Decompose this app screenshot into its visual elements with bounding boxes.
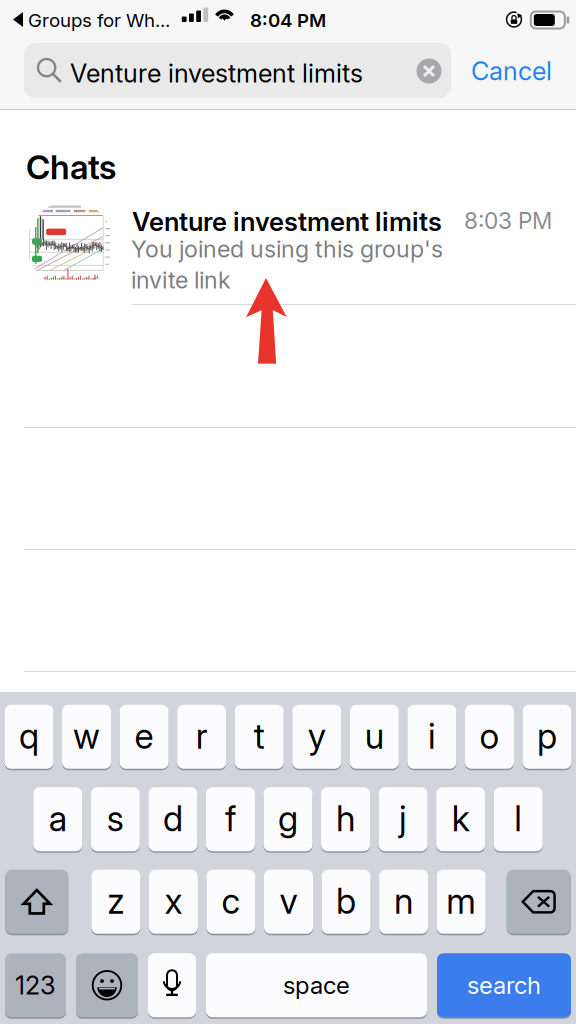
staticText: d xyxy=(163,798,183,840)
staticText: p xyxy=(537,715,557,757)
staticText: Venture investment limits xyxy=(132,206,442,237)
staticText: v xyxy=(279,880,297,922)
staticText: Groups for Wh... xyxy=(28,9,170,32)
staticText: q xyxy=(19,715,39,757)
button[interactable]: n xyxy=(379,869,428,934)
button[interactable]: j xyxy=(379,786,428,852)
staticText: space xyxy=(283,971,350,1000)
button[interactable]: Clear search text xyxy=(408,47,450,95)
staticText: 8:03 PM xyxy=(464,207,552,234)
staticText: h xyxy=(336,798,355,840)
button[interactable]: space xyxy=(206,952,427,1018)
button[interactable]: f xyxy=(206,786,255,852)
staticText: u xyxy=(365,715,384,757)
staticText: You joined using this group's xyxy=(131,235,443,263)
staticText: j xyxy=(399,798,407,840)
staticText: y xyxy=(308,715,326,757)
button[interactable]: w xyxy=(62,704,111,769)
button[interactable]: a xyxy=(33,786,82,852)
staticText: e xyxy=(135,715,154,757)
staticText: k xyxy=(452,798,470,840)
button[interactable]: i xyxy=(407,704,456,769)
staticText: Chats xyxy=(26,147,116,187)
staticText: i xyxy=(428,715,436,757)
staticText: m xyxy=(446,880,476,922)
button[interactable]: k xyxy=(436,786,485,852)
button[interactable]: t xyxy=(235,704,284,769)
staticText: 123 xyxy=(15,970,56,1001)
staticText: f xyxy=(225,798,236,840)
staticText: search xyxy=(467,971,541,1000)
staticText: g xyxy=(278,798,298,840)
staticText: o xyxy=(479,715,499,757)
staticText: w xyxy=(73,715,100,757)
staticText: c xyxy=(221,880,240,922)
button[interactable]: b xyxy=(322,869,371,934)
button[interactable]: e xyxy=(120,704,169,769)
button[interactable]: q xyxy=(4,704,53,769)
staticText: x xyxy=(164,880,182,922)
button[interactable]: p xyxy=(522,704,571,769)
button[interactable]: y xyxy=(292,704,341,769)
button[interactable]: Delete xyxy=(507,869,571,934)
button[interactable]: Emoji keyboard xyxy=(76,952,138,1018)
button[interactable]: h xyxy=(321,786,370,852)
button[interactable]: g xyxy=(263,786,312,852)
staticText: n xyxy=(394,880,413,922)
staticText: invite link xyxy=(131,266,231,294)
button[interactable]: x xyxy=(149,869,198,934)
button[interactable]: s xyxy=(91,786,140,852)
staticText: Cancel xyxy=(471,56,552,86)
button[interactable]: r xyxy=(177,704,226,769)
button[interactable]: search xyxy=(437,952,571,1018)
button[interactable]: Venture investment limits xyxy=(0,190,576,305)
button[interactable]: c xyxy=(206,869,255,934)
button[interactable]: z xyxy=(91,869,140,934)
staticText: r xyxy=(196,715,208,757)
staticText: Venture investment limits xyxy=(70,58,363,89)
staticText: a xyxy=(49,798,67,840)
staticText: b xyxy=(336,880,356,922)
button[interactable]: l xyxy=(494,786,543,852)
button[interactable]: v xyxy=(264,869,313,934)
button[interactable]: d xyxy=(148,786,197,852)
button[interactable]: Shift xyxy=(5,869,68,934)
button[interactable]: m xyxy=(437,869,486,934)
staticText: t xyxy=(254,715,265,757)
staticText: z xyxy=(107,880,124,922)
button[interactable]: o xyxy=(465,704,514,769)
button[interactable]: u xyxy=(350,704,399,769)
staticText: s xyxy=(107,798,124,840)
button[interactable]: Numbers and symbols xyxy=(5,952,66,1018)
button[interactable]: Dictate xyxy=(148,952,196,1018)
button[interactable]: Cancel xyxy=(471,46,571,96)
staticText: l xyxy=(514,798,522,840)
staticText: 8:04 PM xyxy=(250,9,326,32)
